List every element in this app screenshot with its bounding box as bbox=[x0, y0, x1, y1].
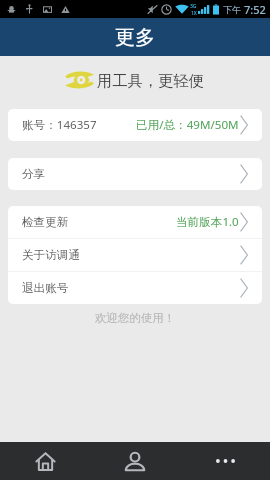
staticText: 用工具，更轻便 bbox=[97, 71, 205, 90]
button[interactable]: Account bbox=[90, 442, 180, 480]
staticText: 分享 bbox=[22, 167, 46, 182]
staticText: 欢迎您的使用！ bbox=[0, 311, 270, 325]
staticText: 下午 bbox=[223, 4, 241, 15]
button[interactable]: 退出账号 bbox=[8, 272, 262, 304]
button[interactable]: 账号：146357 bbox=[8, 109, 262, 141]
staticText: 账号：146357 bbox=[22, 117, 97, 133]
button[interactable]: 分享 bbox=[8, 158, 262, 190]
staticText: 退出账号 bbox=[22, 281, 69, 296]
staticText: 3G bbox=[190, 3, 197, 10]
staticText: 关于访调通 bbox=[22, 248, 80, 263]
staticText: 当前版本1.0 bbox=[176, 214, 239, 230]
staticText: 更多 bbox=[115, 25, 155, 50]
staticText: 检查更新 bbox=[22, 215, 69, 230]
button[interactable]: 检查更新 bbox=[8, 206, 262, 238]
button[interactable]: More options bbox=[180, 442, 270, 480]
staticText: 7:52 bbox=[244, 2, 266, 17]
button[interactable]: 关于访调通 bbox=[8, 239, 262, 271]
staticText: 已用/总：49M/50M bbox=[136, 117, 239, 133]
button[interactable]: Home bbox=[0, 442, 90, 480]
staticText: 1X bbox=[191, 10, 197, 17]
